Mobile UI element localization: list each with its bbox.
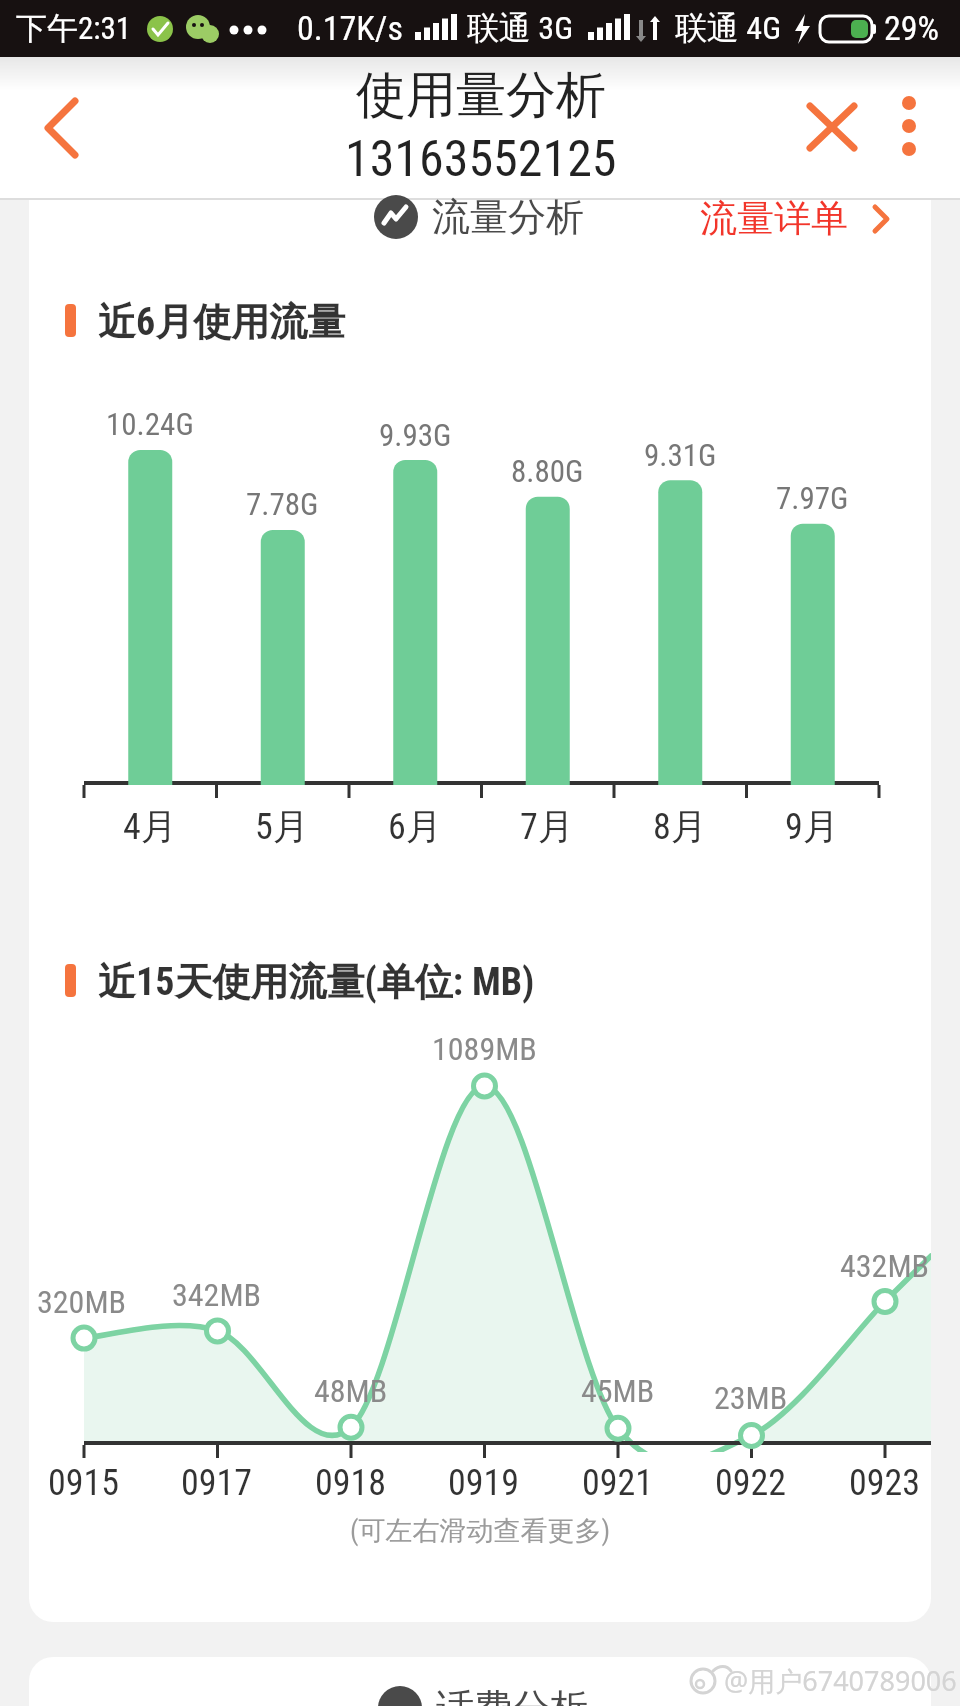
staticText: 4月 [123, 804, 177, 849]
staticText: 话费分析 [436, 1684, 588, 1706]
staticText: 0918 [315, 1462, 387, 1504]
staticText: 23MB [714, 1379, 788, 1417]
staticText: 8月 [653, 804, 707, 849]
button[interactable] [28, 87, 98, 177]
staticText: 0921 [582, 1462, 654, 1504]
staticText: 0923 [849, 1462, 921, 1504]
staticText: 近15天使用流量(单位: MB) [98, 958, 535, 1006]
staticText: 5月 [255, 804, 309, 849]
staticText: 联通 4G [675, 8, 782, 48]
staticText: 7.78G [246, 486, 319, 522]
staticText: 联通 3G [467, 8, 574, 48]
staticText: 13163552125 [345, 130, 617, 189]
staticText: 0922 [715, 1462, 787, 1504]
staticText: 1089MB [432, 1030, 537, 1068]
staticText: 0919 [448, 1462, 520, 1504]
staticText: 8.80G [511, 453, 584, 489]
staticText: 7.97G [776, 480, 849, 516]
staticText: 0.17K/s [297, 8, 403, 48]
staticText: 320MB [37, 1283, 127, 1321]
staticText: 9月 [785, 804, 839, 849]
staticText: 10.24G [106, 406, 194, 442]
staticText: 45MB [581, 1372, 655, 1410]
staticText: 下午2:31 [16, 9, 132, 48]
staticText: 9.31G [644, 437, 717, 473]
staticText: 使用量分析 [356, 64, 606, 127]
staticText: 48MB [314, 1372, 388, 1410]
staticText: (可左右滑动查看更多) [350, 1514, 611, 1548]
staticText: 342MB [172, 1276, 262, 1314]
staticText: 432MB [840, 1247, 930, 1285]
staticText: 6月 [388, 804, 442, 849]
staticText: @用户6740789006 [724, 1662, 957, 1699]
staticText: 0915 [48, 1462, 120, 1504]
button[interactable] [880, 92, 938, 162]
staticText: 29% [884, 8, 940, 48]
button[interactable]: 流量详单 [664, 189, 884, 247]
button[interactable] [29, 1657, 931, 1706]
staticText: 流量分析 [432, 193, 584, 241]
staticText: 7月 [520, 804, 574, 849]
button[interactable] [795, 92, 869, 162]
staticText: 流量详单 [700, 195, 848, 242]
staticText: 9.93G [379, 417, 452, 453]
staticText: 近6月使用流量 [98, 298, 346, 346]
staticText: 0917 [181, 1462, 253, 1504]
